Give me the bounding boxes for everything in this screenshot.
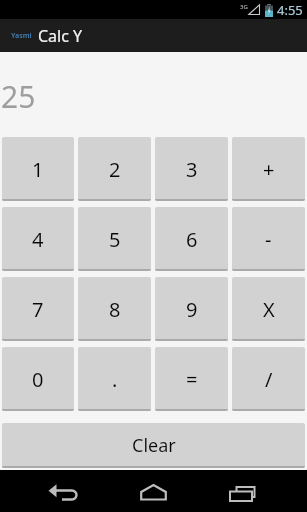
staticText: =: [186, 366, 198, 393]
staticText: -: [265, 226, 272, 253]
button[interactable]: X: [232, 277, 305, 341]
staticText: 6: [186, 226, 198, 253]
staticText: 8: [109, 296, 121, 323]
button[interactable]: Clear: [2, 423, 305, 468]
button[interactable]: 4: [2, 207, 74, 271]
staticText: 2: [109, 156, 121, 183]
button[interactable]: /: [232, 347, 305, 411]
staticText: Calc Y: [38, 25, 83, 47]
button[interactable]: 3: [155, 137, 228, 201]
button[interactable]: 5: [78, 207, 151, 271]
button[interactable]: 1: [2, 137, 74, 201]
button[interactable]: =: [155, 347, 228, 411]
staticText: 3G: [240, 3, 248, 11]
staticText: 0: [32, 366, 44, 393]
staticText: 5: [109, 226, 121, 253]
staticText: 1: [32, 156, 44, 183]
button[interactable]: 6: [155, 207, 228, 271]
staticText: Clear: [132, 433, 176, 458]
button[interactable]: [140, 484, 167, 501]
button[interactable]: 9: [155, 277, 228, 341]
staticText: 3: [186, 156, 198, 183]
staticText: /: [265, 366, 273, 393]
staticText: 9: [186, 296, 198, 323]
staticText: X: [263, 296, 275, 323]
button[interactable]: 7: [2, 277, 74, 341]
button[interactable]: +: [232, 137, 305, 201]
staticText: Yasmi: [11, 31, 32, 41]
staticText: 25: [1, 76, 36, 117]
staticText: 4:55: [277, 1, 303, 19]
button[interactable]: 0: [2, 347, 74, 411]
button[interactable]: 8: [78, 277, 151, 341]
staticText: +: [263, 156, 275, 183]
staticText: .: [112, 366, 118, 393]
staticText: 4: [32, 226, 44, 253]
staticText: 7: [32, 296, 44, 323]
button[interactable]: [48, 483, 79, 501]
button[interactable]: .: [78, 347, 151, 411]
button[interactable]: -: [232, 207, 305, 271]
button[interactable]: [229, 486, 256, 502]
button[interactable]: 2: [78, 137, 151, 201]
